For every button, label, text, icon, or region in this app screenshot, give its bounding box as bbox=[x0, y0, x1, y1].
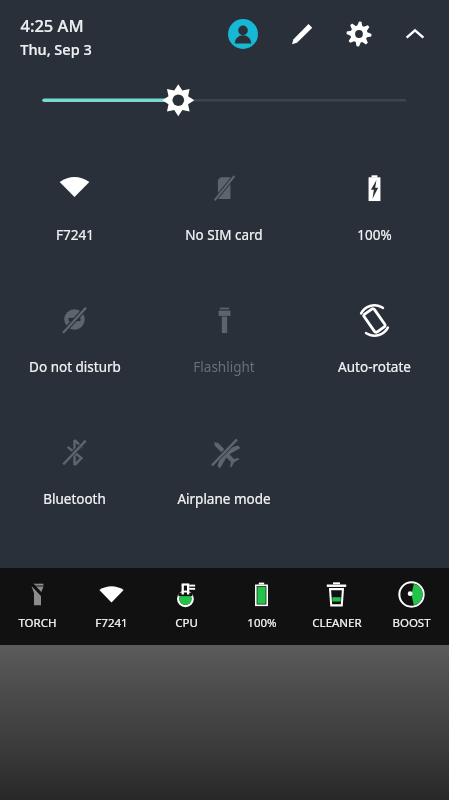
button[interactable]: Collapse bbox=[393, 12, 437, 56]
button[interactable]: Auto-rotate bbox=[299, 294, 449, 390]
button[interactable]: Bluetooth bbox=[0, 426, 149, 522]
staticText: BOOST bbox=[392, 615, 431, 631]
staticText: Auto-rotate bbox=[338, 358, 411, 376]
button[interactable]: User profile bbox=[221, 12, 265, 56]
button[interactable]: CPU bbox=[149, 568, 224, 645]
button[interactable]: TORCH bbox=[0, 568, 74, 645]
staticText: Thu, Sep 3 bbox=[20, 39, 92, 59]
button[interactable]: Settings bbox=[337, 12, 381, 56]
staticText: CLEANER bbox=[312, 615, 362, 631]
staticText: Do not disturb bbox=[29, 358, 121, 376]
staticText: Airplane mode bbox=[177, 490, 271, 508]
button[interactable]: 100% bbox=[299, 162, 449, 258]
staticText: 100% bbox=[357, 226, 392, 244]
button[interactable]: Do not disturb bbox=[0, 294, 149, 390]
staticText: F7241 bbox=[95, 615, 128, 631]
staticText: Bluetooth bbox=[43, 490, 106, 508]
button[interactable]: Flashlight bbox=[149, 294, 299, 390]
button[interactable]: CLEANER bbox=[299, 568, 374, 645]
button[interactable]: F7241 bbox=[74, 568, 149, 645]
staticText: Flashlight bbox=[193, 358, 255, 376]
staticText: CPU bbox=[175, 615, 198, 631]
button[interactable]: F7241 bbox=[0, 162, 149, 258]
button[interactable]: No SIM card bbox=[149, 162, 299, 258]
staticText: F7241 bbox=[56, 226, 94, 244]
button[interactable]: 100% bbox=[224, 568, 299, 645]
button[interactable]: Edit bbox=[279, 12, 323, 56]
staticText: No SIM card bbox=[185, 226, 263, 244]
staticText: 100% bbox=[247, 615, 277, 631]
button[interactable]: Brightness bbox=[0, 72, 449, 132]
button[interactable]: Airplane mode bbox=[149, 426, 299, 522]
staticText: 4:25 AM bbox=[20, 14, 84, 36]
staticText: TORCH bbox=[18, 615, 57, 631]
button[interactable]: BOOST bbox=[374, 568, 449, 645]
